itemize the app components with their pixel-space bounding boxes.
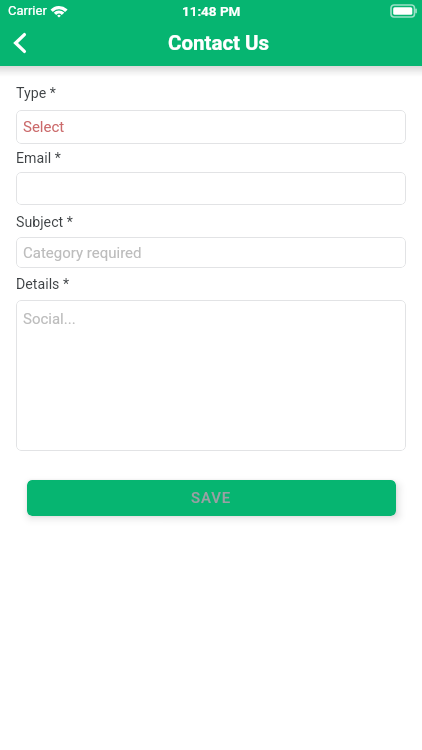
button[interactable]: Category required xyxy=(16,237,406,268)
staticText: Details * xyxy=(16,276,70,293)
staticText: Type * xyxy=(16,85,56,102)
staticText: Category required xyxy=(23,244,142,262)
staticText: Social... xyxy=(23,310,76,328)
button[interactable]: Back xyxy=(0,20,42,65)
staticText: Subject * xyxy=(16,214,73,231)
staticText: Select xyxy=(23,118,65,136)
staticText: Carrier xyxy=(8,3,47,18)
staticText: SAVE xyxy=(191,489,232,507)
button[interactable]: SAVE xyxy=(27,480,396,516)
button[interactable]: Social... xyxy=(16,300,406,451)
button[interactable] xyxy=(16,172,406,205)
staticText: Contact Us xyxy=(168,31,270,55)
button[interactable]: Select xyxy=(16,110,406,144)
staticText: Email * xyxy=(16,150,61,167)
staticText: 11:48 PM xyxy=(182,3,241,19)
